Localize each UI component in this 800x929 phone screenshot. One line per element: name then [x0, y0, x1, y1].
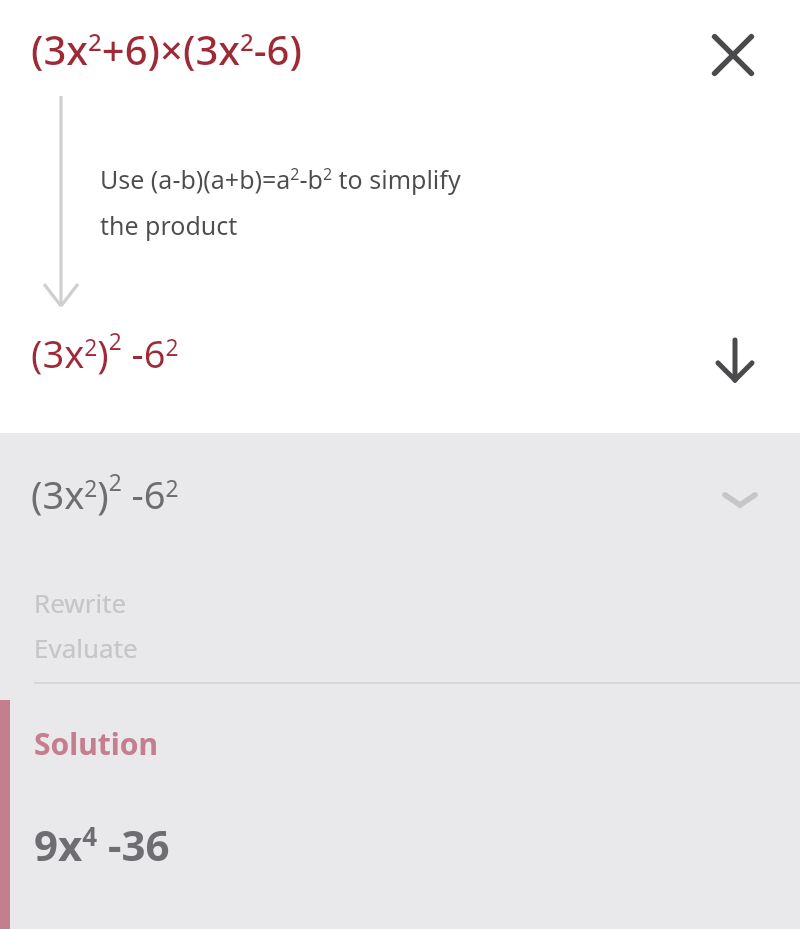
staticText: (3x2)2 -62	[31, 467, 179, 520]
staticText: the product	[100, 208, 238, 242]
staticText: (3x2)2 -62	[31, 326, 179, 379]
staticText: Use (a-b)(a+b)=a2-b2 to simplify	[100, 162, 461, 196]
staticText: (3x2+6)×(3x2-6)	[31, 22, 302, 76]
button[interactable]: (3x2)2 -62	[0, 433, 800, 682]
button[interactable]: Close	[693, 15, 773, 95]
staticText: 9x4 -36	[34, 816, 170, 873]
staticText: Solution	[34, 723, 158, 764]
button[interactable]: Expand	[705, 466, 775, 536]
staticText: Evaluate	[34, 630, 138, 665]
staticText: Rewrite	[34, 585, 127, 620]
button[interactable]: Next step	[695, 320, 775, 400]
